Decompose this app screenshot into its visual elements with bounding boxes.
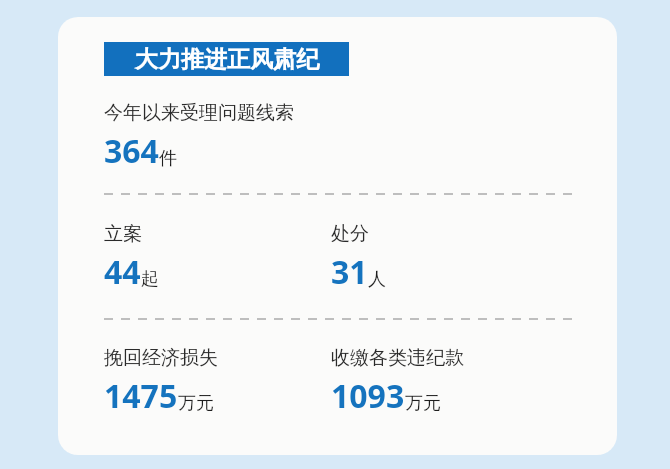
staticText: 挽回经济损失 bbox=[104, 346, 218, 370]
button[interactable]: 收缴各类违纪款 bbox=[331, 346, 464, 418]
button[interactable]: 立案 bbox=[104, 222, 331, 294]
staticText: 件 bbox=[159, 147, 177, 170]
button[interactable]: 今年以来受理问题线索 bbox=[104, 101, 294, 173]
staticText: 今年以来受理问题线索 bbox=[104, 101, 294, 125]
staticText: 大力推进正风肃纪 bbox=[135, 45, 319, 74]
staticText: 收缴各类违纪款 bbox=[331, 346, 464, 370]
staticText: 364 bbox=[104, 129, 159, 173]
staticText: 起 bbox=[141, 268, 159, 291]
staticText: 处分 bbox=[331, 222, 369, 246]
button[interactable]: 大力推进正风肃纪 bbox=[104, 42, 349, 76]
button[interactable]: 处分 bbox=[331, 222, 386, 294]
staticText: 31 bbox=[331, 250, 368, 294]
staticText: 万元 bbox=[405, 392, 441, 415]
staticText: 立案 bbox=[104, 222, 142, 246]
staticText: 44 bbox=[104, 250, 141, 294]
staticText: 1475 bbox=[104, 374, 178, 418]
staticText: 1093 bbox=[331, 374, 405, 418]
staticText: 万元 bbox=[178, 392, 214, 415]
button[interactable]: 挽回经济损失 bbox=[104, 346, 331, 418]
staticText: 人 bbox=[368, 268, 386, 291]
